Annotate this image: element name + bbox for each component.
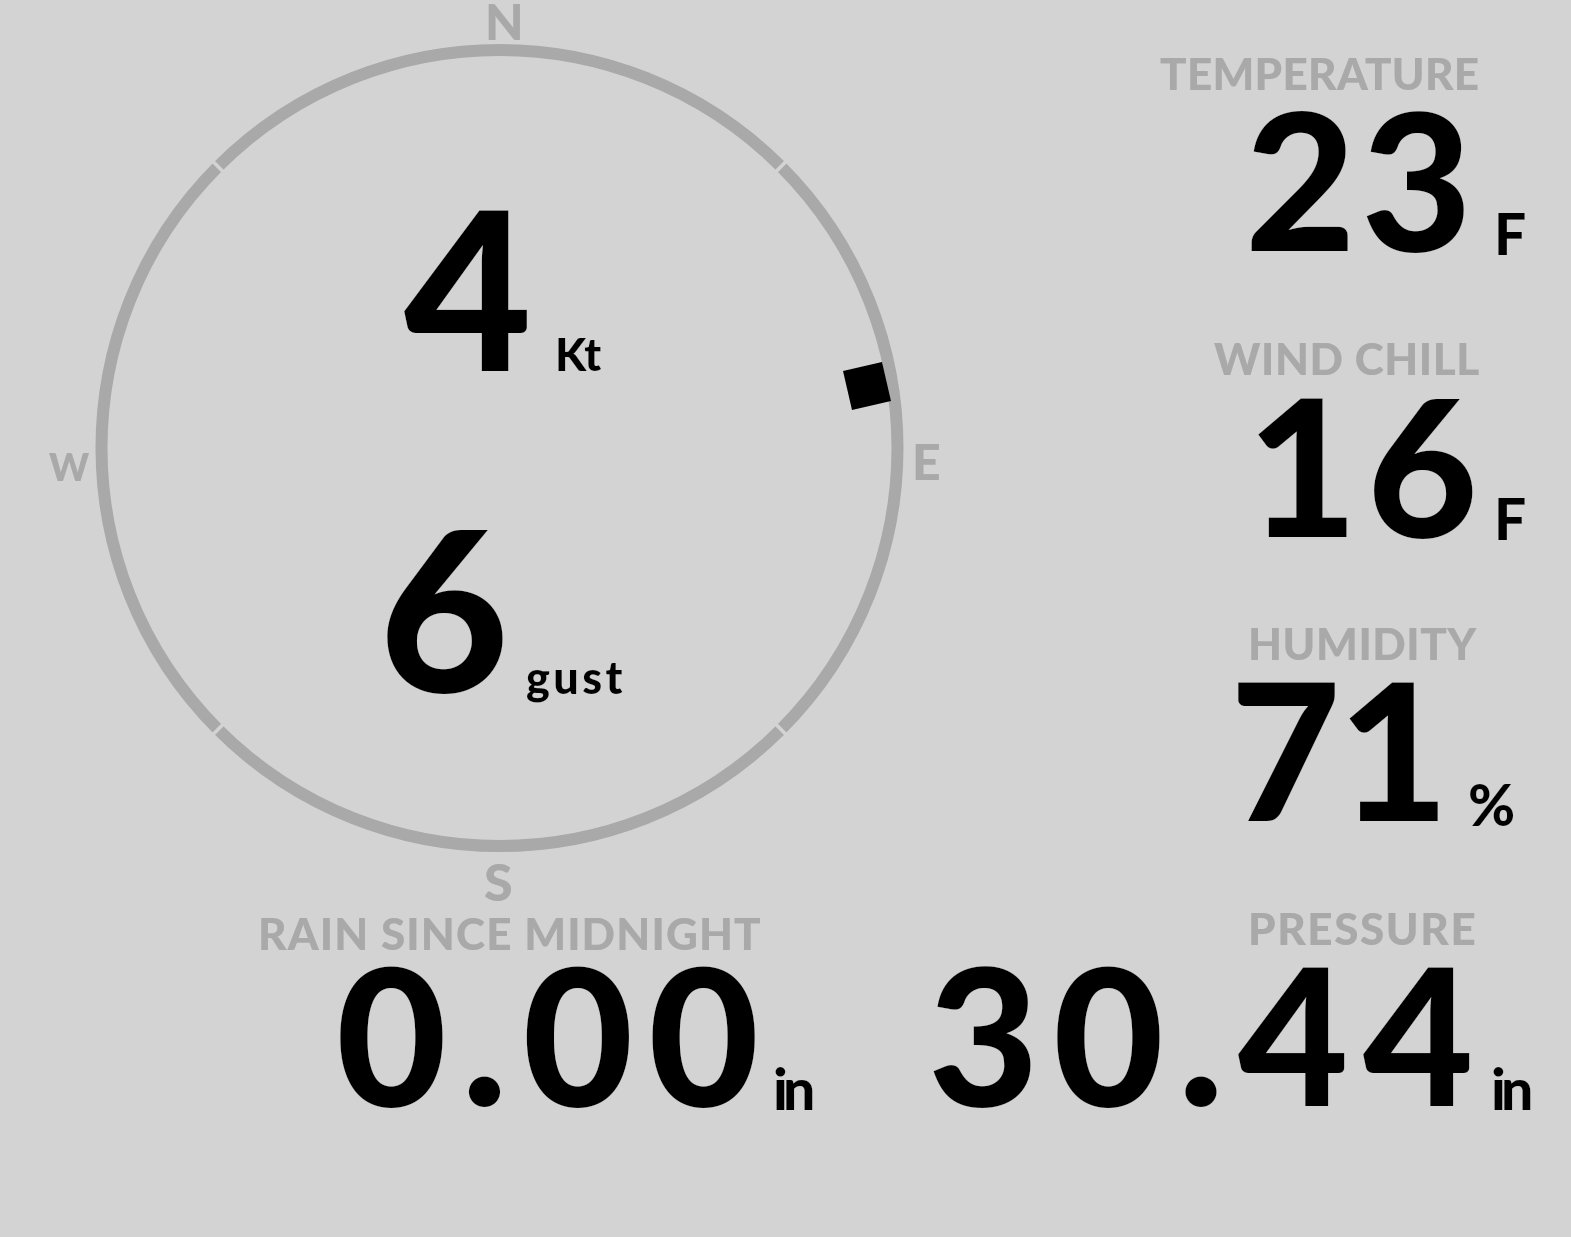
- staticText: N: [485, 0, 524, 51]
- staticText: 4: [404, 153, 533, 418]
- staticText: %: [1468, 770, 1516, 838]
- staticText: RAIN SINCE MIDNIGHT: [258, 907, 762, 960]
- staticText: 23: [1245, 62, 1478, 291]
- other: Wind direction: [843, 362, 891, 410]
- staticText: TEMPERATURE: [1160, 47, 1480, 100]
- staticText: F: [1494, 199, 1527, 267]
- staticText: HUMIDITY: [1248, 617, 1477, 670]
- staticText: PRESSURE: [1248, 902, 1478, 955]
- staticText: E: [912, 431, 941, 491]
- staticText: 30.44: [928, 917, 1489, 1146]
- staticText: 6: [379, 471, 509, 740]
- staticText: in: [773, 1054, 811, 1122]
- staticText: in: [1491, 1054, 1529, 1122]
- staticText: 0.00: [336, 917, 775, 1146]
- staticText: gust: [526, 650, 626, 704]
- staticText: F: [1494, 484, 1527, 552]
- staticText: S: [484, 850, 513, 912]
- staticText: WIND CHILL: [1214, 332, 1480, 385]
- staticText: Kt: [555, 327, 602, 381]
- staticText: W: [49, 443, 90, 489]
- staticText: 71: [1230, 632, 1447, 861]
- staticText: 16: [1247, 348, 1487, 577]
